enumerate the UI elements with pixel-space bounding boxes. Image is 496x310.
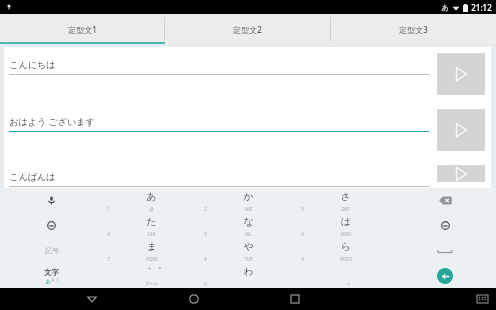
staticText: PQRS [146,256,158,262]
staticText: 7 [107,256,110,262]
staticText: 3 [301,206,304,212]
button[interactable]: Change keyboard [474,291,490,307]
button[interactable]: Play [437,165,485,182]
staticText: 8 [204,256,207,262]
staticText: 4 [107,231,110,237]
button[interactable]: は [297,213,394,238]
staticText: ABC [244,206,253,212]
staticText: @ [149,206,154,212]
staticText: MNO [340,231,352,237]
staticText: こんにちは [9,59,56,70]
staticText: あ [441,3,449,12]
button[interactable]: circle [394,213,496,238]
staticText: GHI [147,231,156,237]
staticText: TUV [244,256,253,262]
staticText: 9 [301,256,304,262]
staticText: 、。 [244,281,253,287]
staticText: か [243,190,254,203]
staticText: あ [146,190,157,203]
staticText: 定型文3 [399,24,428,35]
button[interactable]: Recent apps [285,289,305,309]
staticText: 定型文2 [233,24,262,35]
staticText: あ [45,278,51,284]
staticText: おはよう ございます [9,115,95,127]
button[interactable]: Home [184,289,204,309]
staticText: 21:12 [471,2,492,13]
staticText: 6 [301,231,304,237]
staticText: A 1 [51,277,59,284]
button[interactable]: 定型文1 [0,14,164,44]
staticText: や [243,240,254,253]
staticText: 1 [107,206,110,212]
button[interactable]: ま [103,238,200,263]
button[interactable]: あ [103,188,200,213]
staticText: な [243,215,254,228]
button[interactable]: Back [82,289,102,309]
button[interactable]: Play [437,109,485,151]
staticText: DEF [341,206,350,212]
staticText: わ [243,265,254,278]
button[interactable]: わ [200,263,297,288]
staticText: 2 [204,206,207,212]
staticText: は [340,215,351,228]
staticText: ゛゜ [141,265,162,278]
button[interactable]: ゛゜ [103,263,200,288]
staticText: ら [340,240,351,253]
button[interactable]: おはよう ございます [9,115,429,132]
button[interactable]: Play [437,53,485,95]
button[interactable]: か [200,188,297,213]
staticText: 0 [204,281,207,287]
button[interactable]: こんばんは [9,171,429,187]
button[interactable]: な [200,213,297,238]
staticText: 5 [204,231,207,237]
button[interactable]: enter [394,263,496,288]
staticText: こんばんは [9,171,56,182]
button[interactable]: mic [0,188,103,213]
button[interactable]: space [394,238,496,263]
button[interactable]: 定型文3 [331,14,496,44]
button[interactable]: 定型文2 [165,14,330,44]
button[interactable]: た [103,213,200,238]
staticText: JKL [245,231,252,237]
staticText: WXYZ [340,256,352,262]
staticText: 定型文1 [68,24,97,35]
button[interactable]: kigou [0,238,103,263]
button[interactable]: や [200,238,297,263]
staticText: 、 ？ [340,281,351,287]
button[interactable]: こんにちは [9,59,429,75]
button[interactable]: moji [0,263,103,288]
staticText: 大⇔小 [145,281,158,287]
staticText: 記号 [45,246,59,255]
staticText: ま [146,240,157,253]
button[interactable]: さ [297,188,394,213]
staticText: た [146,215,157,228]
staticText: 文字 [44,268,59,277]
button[interactable]: backspace [394,188,496,213]
staticText: さ [340,190,351,203]
button[interactable]: ら [297,238,394,263]
button[interactable]: emoji [0,213,103,238]
